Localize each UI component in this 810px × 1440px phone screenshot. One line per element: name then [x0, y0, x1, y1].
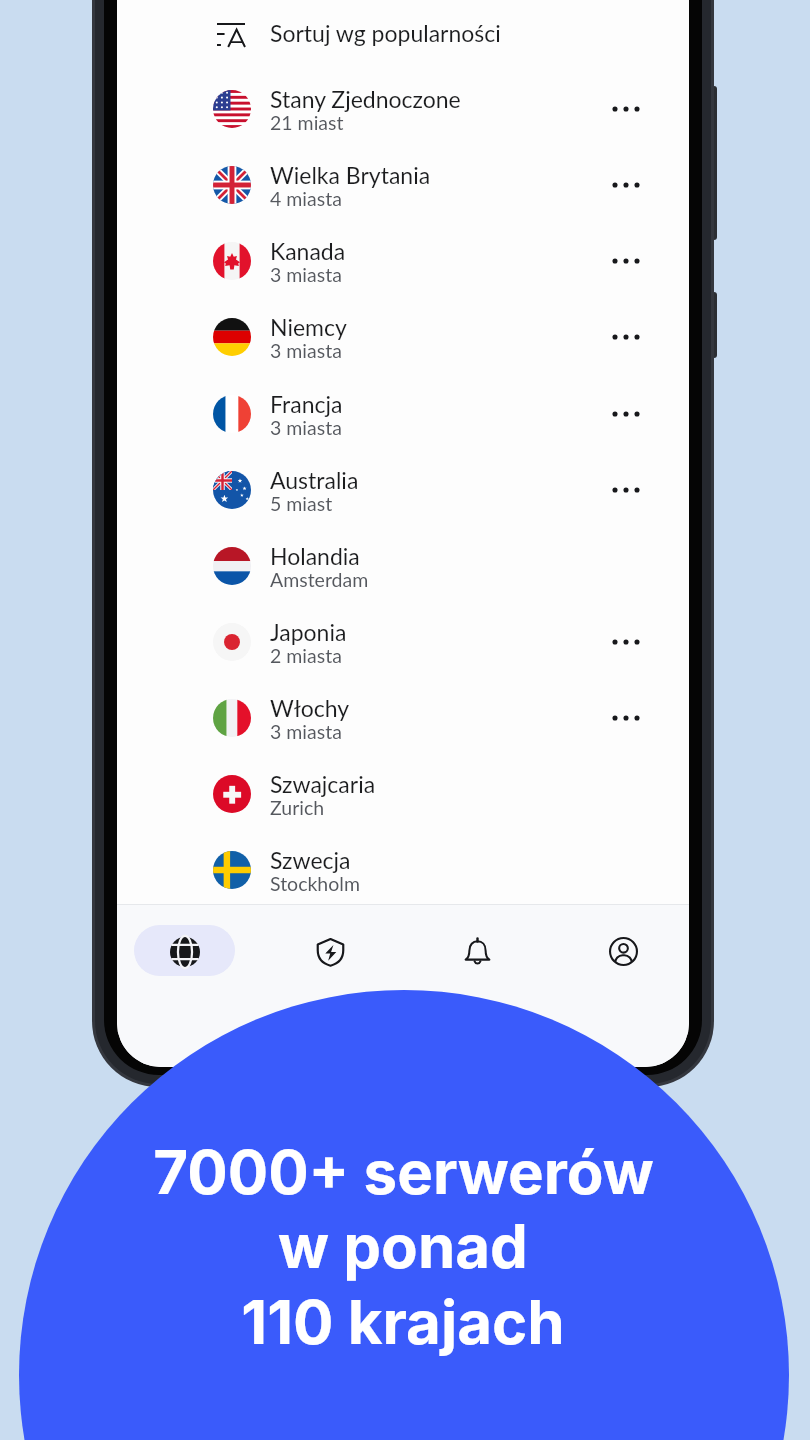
staticText: Stockholm [270, 872, 360, 895]
staticText: 3 miasta [270, 263, 342, 286]
button[interactable]: More options [596, 71, 656, 147]
button[interactable]: Australia [117, 452, 689, 528]
button[interactable]: More options [596, 299, 656, 375]
staticText: 3 miasta [270, 339, 342, 362]
staticText: Szwecja [270, 846, 351, 874]
button[interactable]: Notifications [447, 921, 507, 981]
staticText: 3 miasta [270, 416, 342, 439]
button[interactable]: More options [596, 376, 656, 452]
staticText: Włochy [270, 694, 350, 722]
button[interactable]: Sortuj wg popularności [117, 2, 689, 68]
staticText: 4 miasta [270, 187, 342, 210]
button[interactable]: More options [596, 147, 656, 223]
staticText: 5 miast [270, 492, 333, 515]
button[interactable]: Szwajcaria [117, 756, 689, 832]
button[interactable]: More options [596, 604, 656, 680]
staticText: Holandia [270, 542, 360, 570]
staticText: Australia [270, 466, 359, 494]
button[interactable]: Account [593, 921, 653, 981]
button[interactable]: Stany Zjednoczone [117, 71, 689, 147]
button[interactable]: More options [596, 452, 656, 528]
button[interactable]: Kanada [117, 223, 689, 299]
staticText: 3 miasta [270, 720, 342, 743]
button[interactable]: Szwecja [117, 832, 689, 908]
staticText: Zurich [270, 796, 325, 819]
staticText: Kanada [270, 237, 346, 265]
staticText: Niemcy [270, 313, 347, 341]
button[interactable]: Locations [134, 925, 235, 976]
staticText: 110 krajach [241, 1286, 565, 1359]
staticText: Stany Zjednoczone [270, 85, 461, 113]
staticText: Wielka Brytania [270, 161, 431, 189]
staticText: Francja [270, 390, 343, 418]
staticText: 21 miast [270, 111, 344, 134]
button[interactable]: Protection [300, 921, 360, 981]
button[interactable]: More options [596, 223, 656, 299]
staticText: 7000+ serwerów [153, 1136, 654, 1209]
staticText: 2 miasta [270, 644, 342, 667]
staticText: Japonia [270, 618, 347, 646]
button[interactable]: More options [596, 680, 656, 756]
button[interactable]: Włochy [117, 680, 689, 756]
staticText: Sortuj wg popularności [270, 19, 501, 47]
staticText: Amsterdam [270, 568, 369, 591]
button[interactable]: Holandia [117, 528, 689, 604]
button[interactable]: Francja [117, 376, 689, 452]
staticText: Szwajcaria [270, 770, 376, 798]
staticText: w ponad [278, 1210, 528, 1283]
button[interactable]: Niemcy [117, 299, 689, 375]
button[interactable]: Wielka Brytania [117, 147, 689, 223]
button[interactable]: Japonia [117, 604, 689, 680]
